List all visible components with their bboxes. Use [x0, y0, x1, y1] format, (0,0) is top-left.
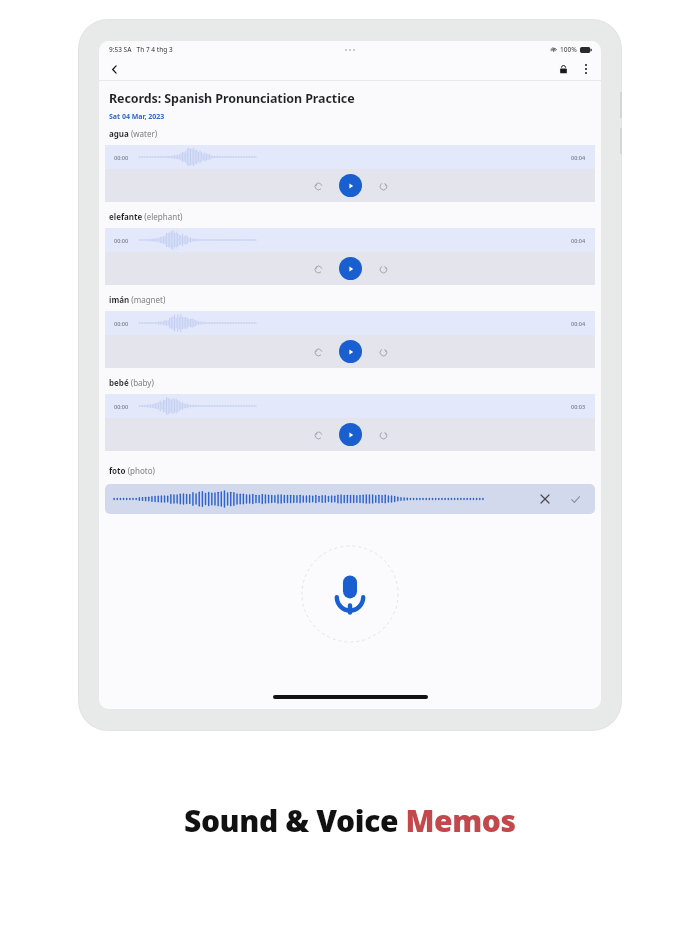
button[interactable]: Play: [339, 257, 362, 280]
button[interactable]: Play: [339, 174, 362, 197]
button[interactable]: Discard recording: [537, 491, 553, 507]
button[interactable]: Play: [339, 340, 362, 363]
button[interactable]: Rewind 5 seconds: [309, 260, 327, 278]
staticText: 00:04: [571, 320, 586, 327]
staticText: 00:00: [114, 237, 129, 244]
staticText: elefante (elephant): [109, 211, 183, 222]
staticText: agua (water): [109, 128, 158, 139]
staticText: 00:00: [114, 403, 129, 410]
staticText: 00:00: [114, 154, 129, 161]
button[interactable]: Forward 5 seconds: [374, 260, 392, 278]
staticText: bebé (baby): [109, 377, 154, 388]
button[interactable]: Rewind 5 seconds: [309, 426, 327, 444]
button[interactable]: More options: [576, 59, 596, 79]
button[interactable]: Forward 5 seconds: [374, 343, 392, 361]
button[interactable]: Record: [300, 544, 400, 644]
staticText: 100%: [560, 45, 577, 54]
button[interactable]: Rewind 5 seconds: [309, 177, 327, 195]
button[interactable]: Forward 5 seconds: [374, 426, 392, 444]
staticText: imán (magnet): [109, 294, 166, 305]
staticText: 00:00: [114, 320, 129, 327]
button[interactable]: Back: [104, 59, 124, 79]
staticText: foto (photo): [109, 465, 155, 476]
button[interactable]: Play: [339, 423, 362, 446]
button[interactable]: Discard recording: [105, 484, 595, 514]
staticText: Sound & Voice Memos: [184, 800, 516, 841]
staticText: 9:53 SA Th 7 4 thg 3: [109, 45, 173, 54]
button[interactable]: Save recording: [567, 491, 583, 507]
staticText: Records: Spanish Pronunciation Practice: [109, 90, 355, 107]
staticText: 00:04: [571, 154, 586, 161]
staticText: 00:04: [571, 237, 586, 244]
button[interactable]: Lock: [553, 59, 573, 79]
button[interactable]: Forward 5 seconds: [374, 177, 392, 195]
staticText: Sat 04 Mar, 2023: [109, 112, 165, 122]
button[interactable]: Rewind 5 seconds: [309, 343, 327, 361]
staticText: 00:03: [571, 403, 586, 410]
